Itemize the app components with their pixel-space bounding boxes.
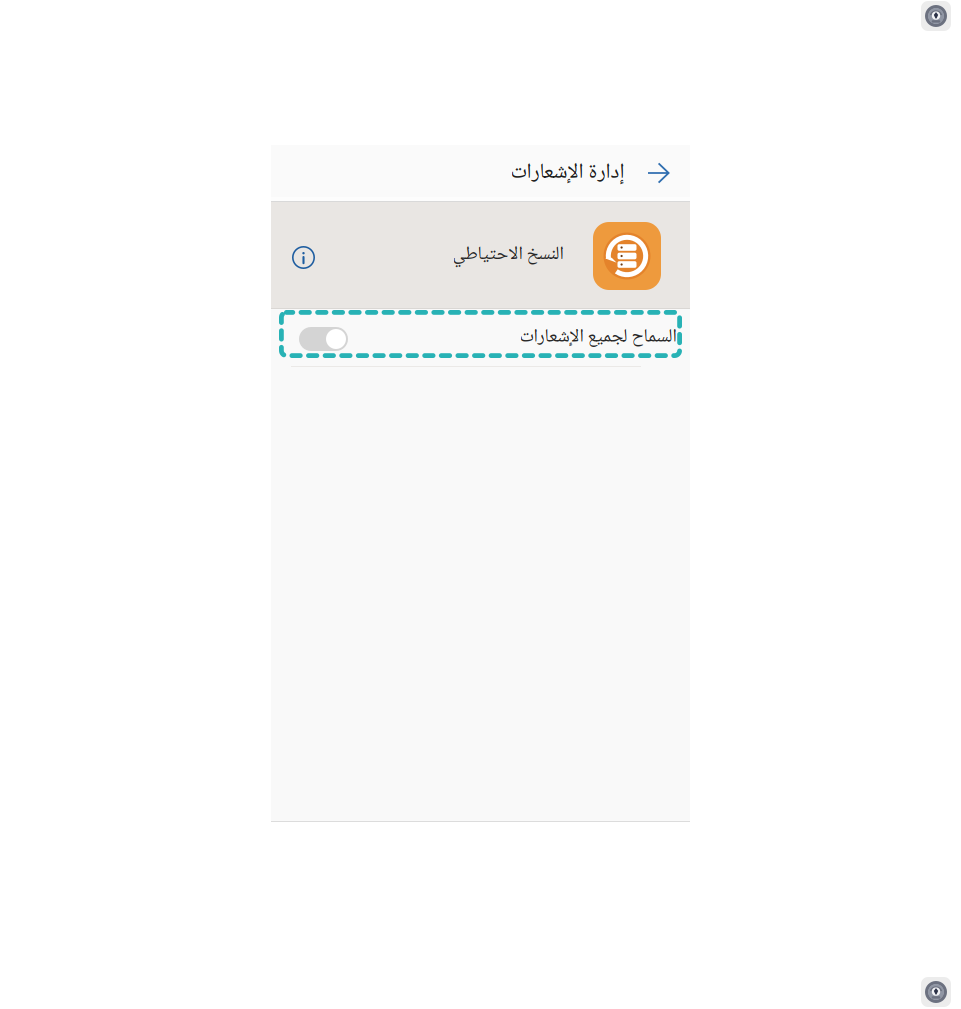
staticText: السماح لجميع الإشعارات bbox=[519, 322, 676, 353]
staticText: النسخ الاحتياطي bbox=[452, 239, 563, 271]
button[interactable]: Tap target bbox=[921, 977, 951, 1007]
button[interactable]: Back bbox=[642, 155, 675, 187]
button[interactable]: Tap target bbox=[921, 1, 951, 31]
staticText: إدارة الإشعارات bbox=[510, 155, 624, 191]
button[interactable]: Information bbox=[287, 240, 316, 269]
button[interactable]: السماح لجميع الإشعارات bbox=[271, 309, 690, 366]
